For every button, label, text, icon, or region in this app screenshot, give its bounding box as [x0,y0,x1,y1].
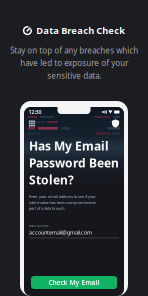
staticText: Check My Email [48,278,99,287]
staticText: part of a data breach. [29,206,65,211]
staticText: accountemail@gmail.com [29,229,92,236]
staticText: have led to exposure of your [20,58,128,68]
button[interactable]: Check My Email [31,276,117,289]
staticText: Password Been [29,155,119,171]
staticText: EMAIL ADDRESS [29,224,48,227]
staticText: Has My Email [29,138,109,154]
staticText: sensitive data. [47,70,101,81]
staticText: Enter your email address to see if your [29,194,96,199]
staticText: Data Breach Check [36,24,125,37]
staticText: information has been compromised as [29,200,96,205]
staticText: 12:30 [28,108,41,116]
staticText: Stay on top of any breaches which [10,45,138,56]
staticText: Stolen? [29,172,74,188]
